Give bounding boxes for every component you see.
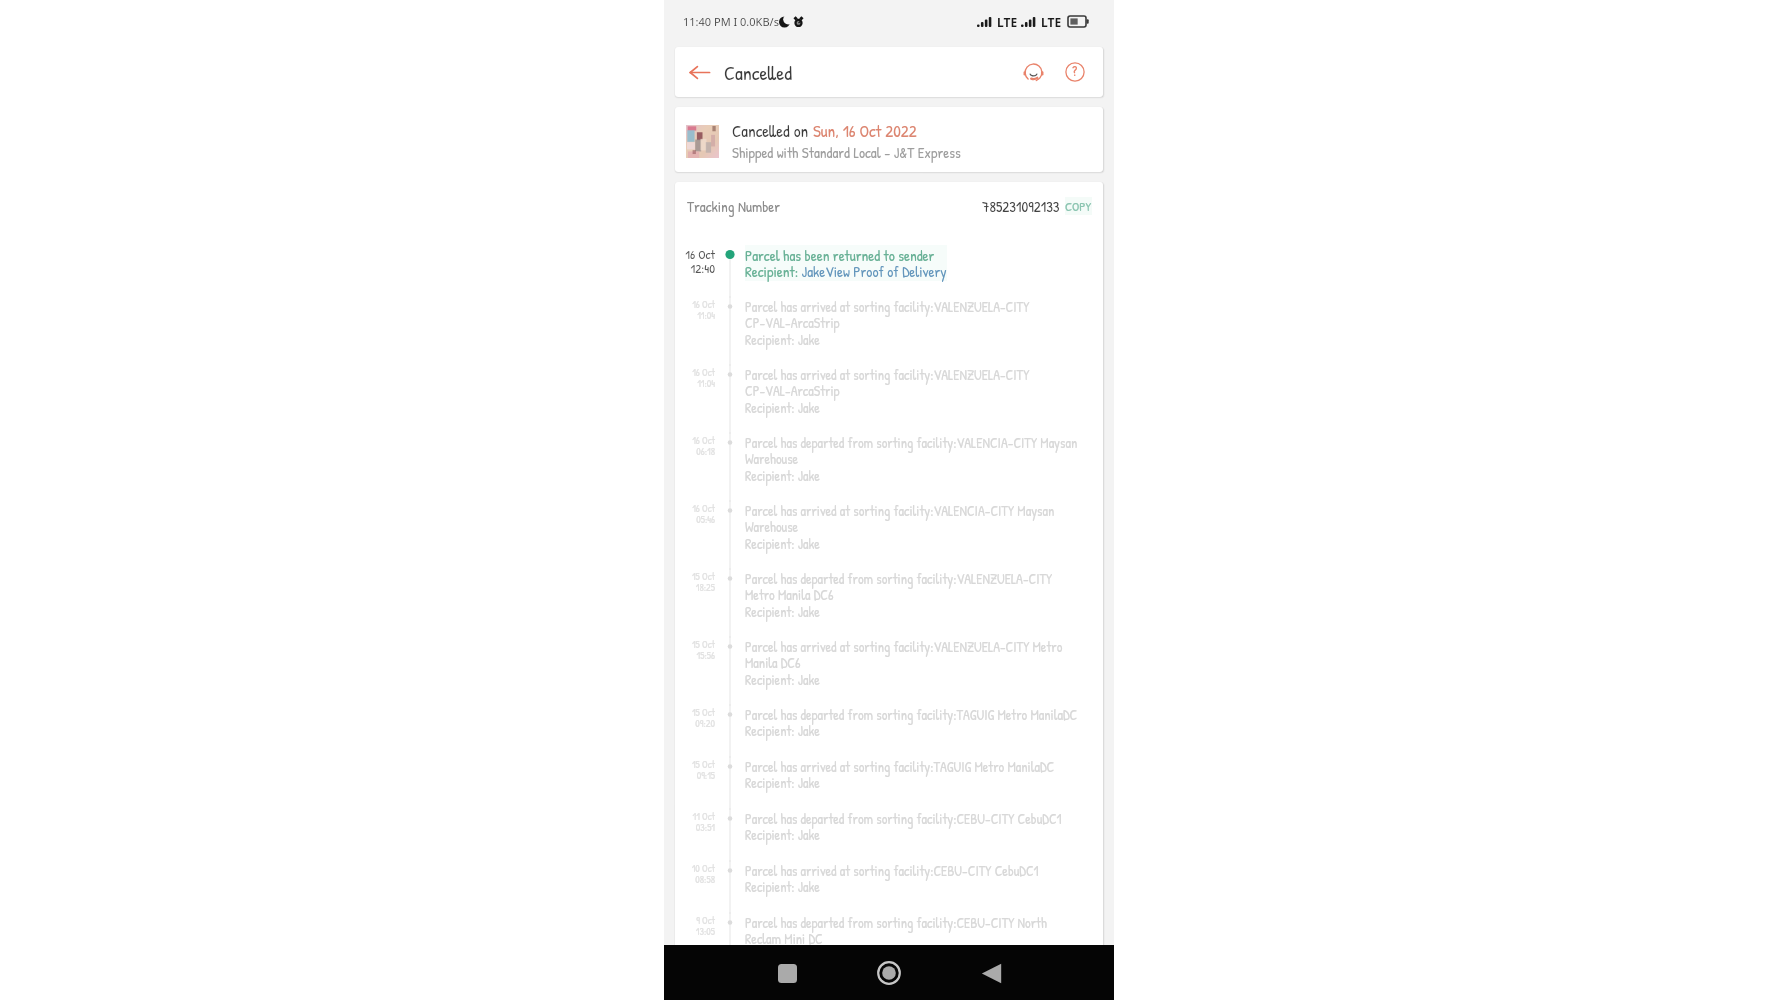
staticText: Parcel has arrived at sorting facility:T… bbox=[745, 757, 1055, 792]
staticText: 16 Oct 12:40 bbox=[685, 245, 715, 277]
staticText: Parcel has departed from sorting facilit… bbox=[745, 705, 1078, 740]
staticText: 16 Oct 05:46 bbox=[692, 502, 715, 527]
staticText: 16 Oct 11:04 bbox=[692, 298, 715, 323]
button[interactable]: Customer support bbox=[1017, 56, 1049, 88]
staticText: LTE bbox=[997, 14, 1018, 30]
staticText: Parcel has been returned to sender Recip… bbox=[745, 245, 947, 281]
button[interactable]: COPY bbox=[1065, 197, 1092, 215]
button[interactable]: Back bbox=[971, 953, 1011, 993]
staticText: Parcel has arrived at sorting facility:V… bbox=[745, 365, 1030, 417]
button[interactable]: Home bbox=[869, 953, 909, 993]
staticText: 11:40 PM I 0.0KB/s bbox=[683, 14, 779, 29]
staticText: 15 Oct 18:25 bbox=[691, 570, 715, 595]
staticText: 15 Oct 09:20 bbox=[691, 706, 715, 731]
button[interactable]: Help bbox=[1059, 56, 1091, 88]
staticText: ? bbox=[1072, 62, 1078, 81]
staticText: Parcel has departed from sorting facilit… bbox=[745, 809, 1062, 844]
staticText: Cancelled bbox=[724, 59, 792, 86]
staticText: COPY bbox=[1065, 197, 1092, 215]
staticText: LTE bbox=[1041, 14, 1062, 30]
staticText: Parcel has arrived at sorting facility:V… bbox=[745, 297, 1030, 349]
staticText: Parcel has departed from sorting facilit… bbox=[745, 569, 1053, 621]
staticText: 15 Oct 09:15 bbox=[691, 758, 715, 783]
button[interactable]: Recent apps bbox=[767, 953, 807, 993]
staticText: 16 Oct 06:18 bbox=[692, 434, 715, 459]
staticText: 15 Oct 15:56 bbox=[691, 638, 715, 663]
staticText: 785231092133 bbox=[982, 196, 1060, 216]
staticText: Parcel has arrived at sorting facility:V… bbox=[745, 501, 1055, 553]
staticText: Cancelled on bbox=[732, 119, 813, 142]
staticText: 16 Oct 11:04 bbox=[692, 366, 715, 391]
staticText: Parcel has arrived at sorting facility:V… bbox=[745, 637, 1063, 689]
staticText: Parcel has departed from sorting facilit… bbox=[745, 913, 1047, 948]
staticText: Tracking Number bbox=[687, 196, 781, 216]
staticText: 11 Oct 03:51 bbox=[692, 810, 715, 835]
button[interactable]: Back bbox=[681, 54, 717, 90]
staticText: Parcel has arrived at sorting facility:C… bbox=[745, 861, 1039, 896]
staticText: 9 Oct 13:05 bbox=[695, 914, 715, 939]
staticText: Parcel has departed from sorting facilit… bbox=[745, 433, 1078, 485]
staticText: 10 Oct 08:58 bbox=[691, 862, 715, 887]
staticText: Sun, 16 Oct 2022 bbox=[813, 119, 917, 142]
staticText: Shipped with Standard Local - J&T Expres… bbox=[732, 142, 961, 162]
